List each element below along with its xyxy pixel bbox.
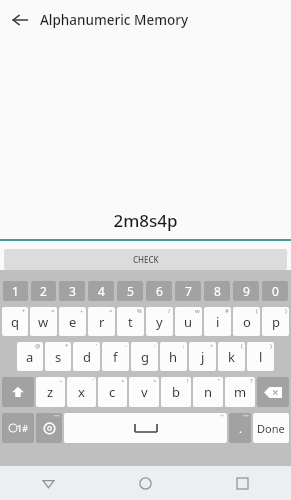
staticText: 0	[272, 283, 279, 299]
button[interactable]: *	[45, 342, 71, 371]
staticText: z	[47, 383, 54, 401]
button[interactable]: Home	[97, 466, 194, 500]
staticText: )	[285, 307, 287, 315]
staticText: f	[113, 348, 118, 366]
staticText: w	[38, 313, 49, 331]
button[interactable]: 5	[117, 281, 143, 301]
staticText: j	[201, 348, 205, 366]
button[interactable]: >	[129, 377, 159, 407]
staticText: a	[26, 348, 34, 366]
staticText: CHECK	[133, 254, 159, 265]
button[interactable]: 7	[175, 281, 201, 301]
button[interactable]: +	[2, 307, 28, 336]
staticText: :	[154, 342, 156, 350]
button[interactable]: 4	[88, 281, 114, 301]
staticText: e	[69, 313, 77, 331]
staticText: '	[96, 342, 98, 350]
button[interactable]: "	[193, 377, 223, 407]
button[interactable]: Recents	[194, 466, 291, 500]
staticText: 9	[243, 283, 250, 299]
button[interactable]: ;	[160, 342, 187, 371]
staticText: %	[137, 307, 142, 315]
staticText: •••	[243, 413, 249, 420]
button[interactable]: '	[73, 342, 100, 371]
staticText: y	[156, 313, 163, 331]
button[interactable]: %	[117, 307, 144, 336]
button[interactable]: :	[131, 342, 158, 371]
staticText: k	[228, 348, 235, 366]
staticText: 2	[40, 283, 47, 299]
staticText: 2m8s4p	[113, 209, 178, 232]
button[interactable]: ×	[30, 307, 57, 336]
staticText: .	[239, 421, 242, 436]
button[interactable]: Settings	[36, 413, 62, 443]
button[interactable]: ~	[36, 377, 65, 407]
button[interactable]: -	[102, 342, 129, 371]
staticText: x	[78, 383, 85, 401]
button[interactable]: Done	[253, 413, 289, 443]
staticText: b	[172, 383, 180, 401]
staticText: q	[11, 313, 19, 331]
button[interactable]: )	[262, 307, 289, 336]
staticText: ^	[210, 342, 214, 350]
button[interactable]: /	[146, 307, 173, 336]
button[interactable]: Back	[0, 0, 40, 40]
staticText: ;	[183, 342, 185, 350]
staticText: 7	[185, 283, 192, 299]
staticText: `	[92, 377, 94, 385]
staticText: >	[153, 377, 157, 385]
button[interactable]: (	[218, 342, 245, 371]
button[interactable]: `	[67, 377, 96, 407]
staticText: 3	[69, 283, 76, 299]
staticText: o	[243, 313, 251, 331]
button[interactable]: @	[17, 342, 43, 371]
button[interactable]: !	[161, 377, 191, 407]
staticText: g	[141, 348, 149, 366]
button[interactable]: Period	[229, 413, 251, 443]
button[interactable]: Space	[64, 413, 227, 443]
staticText: 8	[214, 283, 221, 299]
staticText: *	[65, 342, 69, 350]
staticText: h	[169, 348, 178, 366]
staticText: Alphanumeric Memory	[40, 11, 189, 29]
staticText: /	[168, 307, 171, 315]
button[interactable]: 2	[31, 281, 56, 301]
staticText: +	[22, 307, 26, 315]
button[interactable]: 0	[262, 281, 288, 301]
button[interactable]: <	[98, 377, 127, 407]
button[interactable]: ^	[189, 342, 216, 371]
button[interactable]: Back	[0, 466, 97, 500]
button[interactable]: )	[247, 342, 274, 371]
button[interactable]: Shift	[2, 377, 34, 407]
staticText: <	[121, 377, 125, 385]
button[interactable]: ?	[225, 377, 255, 407]
staticText: ••	[220, 413, 224, 420]
button[interactable]: 8	[204, 281, 230, 301]
staticText: 1#	[17, 422, 28, 434]
button[interactable]: w	[175, 307, 202, 336]
button[interactable]: CHECK	[4, 249, 287, 270]
button[interactable]: #	[204, 307, 231, 336]
staticText: )	[270, 342, 272, 350]
button[interactable]: ÷	[59, 307, 86, 336]
button[interactable]: 3	[59, 281, 85, 301]
button[interactable]: Symbols	[2, 413, 34, 443]
button[interactable]: (	[233, 307, 260, 336]
button[interactable]: 9	[233, 281, 259, 301]
staticText: d	[83, 348, 91, 366]
staticText: Done	[257, 421, 285, 436]
staticText: w	[195, 307, 200, 315]
staticText: "	[218, 377, 221, 385]
staticText: v	[141, 383, 148, 401]
button[interactable]: Backspace	[257, 377, 289, 407]
staticText: ~	[59, 377, 63, 385]
staticText: ÷	[80, 307, 84, 315]
staticText: i	[216, 313, 220, 331]
button[interactable]: 6	[146, 281, 172, 301]
staticText: n	[204, 383, 213, 401]
staticText: 6	[156, 283, 163, 299]
button[interactable]: =	[88, 307, 115, 336]
staticText: m	[234, 383, 247, 401]
button[interactable]: 1	[3, 281, 28, 301]
staticText: ×	[51, 307, 55, 315]
